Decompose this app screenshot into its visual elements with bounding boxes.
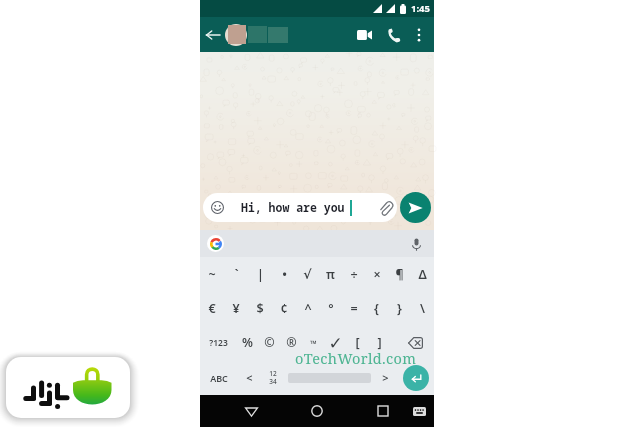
staticText: ` — [234, 266, 239, 283]
staticText: ^ — [304, 300, 312, 317]
staticText: × — [373, 266, 381, 283]
button[interactable]: ` — [224, 257, 248, 291]
button[interactable]: Δ — [411, 257, 434, 291]
button[interactable]: Enter — [403, 365, 429, 391]
button[interactable]: $ — [248, 291, 272, 325]
button[interactable]: ÷ — [342, 257, 365, 291]
button[interactable]: ABC — [200, 360, 238, 395]
button[interactable]: € — [200, 291, 224, 325]
button[interactable]: • — [272, 257, 296, 291]
button[interactable]: > — [374, 360, 397, 395]
button[interactable]: 12 34 — [261, 360, 284, 395]
staticText: | — [257, 266, 264, 283]
staticText: ® — [286, 334, 297, 351]
staticText: = — [350, 300, 358, 317]
staticText: ° — [328, 300, 334, 317]
button[interactable]: ¥ — [224, 291, 248, 325]
staticText: ] — [377, 334, 382, 351]
staticText: oTechWorld.com — [295, 348, 417, 368]
button[interactable]: % — [236, 325, 258, 360]
staticText: ™ — [310, 337, 317, 349]
button[interactable]: | — [248, 257, 272, 291]
button[interactable]: ~ — [200, 257, 224, 291]
button[interactable]: © — [258, 325, 280, 360]
button[interactable]: Hi, how are you — [203, 193, 397, 222]
staticText: ¢ — [280, 300, 288, 317]
button[interactable]: ✓ — [324, 325, 346, 360]
button[interactable]: ¶ — [388, 257, 411, 291]
button[interactable]: π — [319, 257, 342, 291]
button[interactable]: = — [342, 291, 365, 325]
staticText: Hi, how are you — [241, 200, 345, 216]
button[interactable]: Recent apps — [372, 395, 393, 427]
button[interactable]: Google search — [207, 235, 224, 252]
button[interactable]: More options — [409, 25, 429, 45]
button[interactable]: Back — [202, 24, 224, 46]
staticText: 1:45 — [411, 2, 430, 15]
button[interactable]: Voice call — [383, 24, 405, 46]
button[interactable]: ¢ — [272, 291, 296, 325]
staticText: • — [282, 266, 287, 283]
staticText: € — [208, 300, 216, 317]
button[interactable]: { — [365, 291, 388, 325]
button[interactable]: \ — [411, 291, 434, 325]
button[interactable]: } — [388, 291, 411, 325]
staticText: ÷ — [350, 266, 358, 283]
button[interactable]: ?123 — [200, 325, 236, 360]
button[interactable]: ° — [319, 291, 342, 325]
staticText: ✓ — [328, 333, 343, 353]
button[interactable]: × — [365, 257, 388, 291]
staticText: < — [246, 370, 253, 385]
button[interactable]: Voice input — [408, 236, 424, 252]
staticText: ¥ — [232, 300, 240, 317]
staticText: { — [374, 300, 379, 317]
button[interactable]: Send — [400, 192, 431, 223]
staticText: $ — [256, 300, 264, 317]
staticText: © — [264, 334, 275, 351]
staticText: ¶ — [395, 266, 404, 283]
staticText: 12 34 — [269, 369, 277, 386]
button[interactable]: √ — [296, 257, 319, 291]
staticText: ABC — [210, 372, 228, 384]
staticText: } — [397, 300, 402, 317]
button[interactable]: [ — [346, 325, 368, 360]
button[interactable]: ] — [368, 325, 390, 360]
button[interactable]: ™ — [302, 325, 324, 360]
staticText: π — [326, 266, 335, 283]
staticText: ~ — [208, 266, 216, 283]
button[interactable]: < — [238, 360, 261, 395]
staticText: ?123 — [209, 337, 228, 349]
button[interactable]: Video call — [353, 24, 375, 46]
button[interactable]: Home — [306, 395, 327, 427]
staticText: Δ — [418, 266, 427, 283]
button[interactable]: Backspace — [390, 325, 434, 360]
staticText: [ — [355, 334, 360, 351]
staticText: > — [382, 370, 389, 385]
button[interactable]: ® — [280, 325, 302, 360]
button[interactable]: ^ — [296, 291, 319, 325]
button[interactable]: Back — [241, 395, 262, 427]
staticText: √ — [303, 267, 312, 282]
button[interactable]: Cafe Bazaar — [6, 357, 130, 418]
button[interactable]: Switch keyboard — [409, 395, 430, 427]
staticText: % — [242, 334, 253, 351]
staticText: \ — [420, 300, 425, 317]
